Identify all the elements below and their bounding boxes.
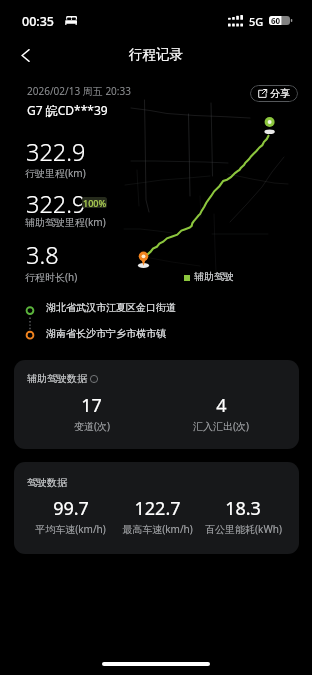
staticText: 18.3: [225, 496, 261, 521]
staticText: 322.9: [26, 136, 86, 168]
staticText: 行程记录: [129, 46, 183, 63]
staticText: 322.9: [26, 188, 86, 220]
staticText: 行驶里程(km): [25, 166, 86, 180]
staticText: 辅助驾驶数据: [27, 372, 87, 385]
staticText: 3.8: [26, 239, 59, 271]
staticText: 5G: [249, 14, 264, 29]
button[interactable]: Back: [9, 39, 41, 71]
staticText: 99.7: [53, 496, 89, 521]
staticText: 122.7: [134, 496, 181, 521]
staticText: 00:35: [22, 13, 55, 30]
button[interactable]: 辅助驾驶数据: [14, 360, 299, 449]
staticText: 辅助驾驶: [194, 270, 234, 283]
staticText: 2026/02/13 周五 20:33: [27, 84, 131, 98]
staticText: 百公里能耗(kWh): [205, 522, 282, 536]
button[interactable]: 驾驶数据: [14, 462, 299, 554]
staticText: 100%: [83, 197, 107, 208]
button[interactable]: 分享: [250, 85, 298, 102]
staticText: 分享: [270, 87, 290, 100]
staticText: 行程时长(h): [25, 270, 78, 284]
staticText: 汇入汇出(次): [193, 419, 249, 433]
staticText: 湖北省武汉市江夏区金口街道: [46, 301, 176, 314]
staticText: 60: [271, 15, 281, 26]
staticText: 17: [81, 393, 102, 418]
staticText: 最高车速(km/h): [122, 522, 193, 536]
staticText: 变道(次): [74, 419, 110, 433]
staticText: 驾驶数据: [27, 476, 67, 489]
staticText: 平均车速(km/h): [35, 522, 106, 536]
staticText: 4: [216, 393, 227, 418]
staticText: G7 皖CD***39: [27, 102, 108, 118]
staticText: 湖南省长沙市宁乡市横市镇: [46, 327, 166, 340]
staticText: 辅助驾驶里程(km): [25, 215, 106, 229]
